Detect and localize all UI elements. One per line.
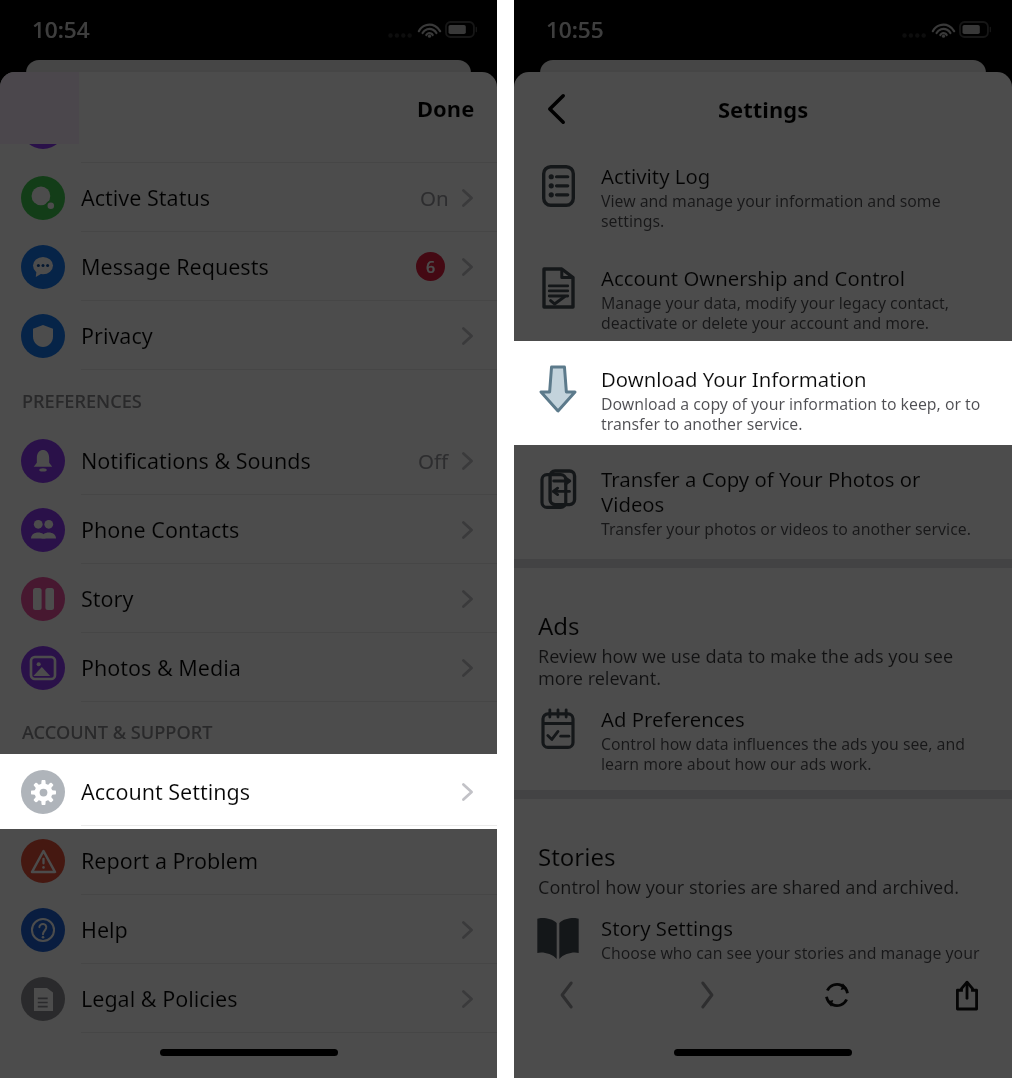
staticText: Activity Log [601,162,711,190]
staticText: Ads [538,609,580,642]
staticText: Stories [538,840,616,873]
staticText: ACCOUNT & SUPPORT [22,720,213,745]
staticText: Control how your stories are shared and … [538,875,960,900]
staticText: Report a Problem [81,846,259,875]
staticText: Legal & Policies [81,984,238,1013]
staticText: Transfer your photos or videos to anothe… [601,518,971,540]
staticText: On [420,184,449,212]
staticText: Control how data influences the ads you … [601,733,983,774]
button[interactable]: Photos & Media [0,633,497,702]
staticText: 6 [426,256,436,278]
button[interactable]: Download Your Information [514,346,1012,454]
staticText: Privacy [81,321,153,350]
staticText: PREFERENCES [22,389,142,414]
staticText: Choose who can see your stories and mana… [601,942,980,964]
staticText: Off [418,447,449,475]
staticText: Settings [718,94,809,124]
button[interactable]: Account Ownership and Control [514,251,1012,346]
button[interactable]: Back [540,972,594,1018]
button[interactable]: Story [0,564,497,633]
staticText: Transfer a Copy of Your Photos or Videos [601,465,983,518]
button[interactable]: Share [940,972,994,1018]
staticText: Photos & Media [81,653,241,682]
button[interactable]: Back [534,87,578,131]
staticText: Phone Contacts [81,515,240,544]
staticText: Download a copy of your information to k… [601,393,983,434]
button[interactable]: Activity Log [514,146,1012,251]
staticText: Account Settings [81,777,251,806]
staticText: Story Settings [601,914,733,942]
button[interactable]: Story Settings [514,900,1012,980]
staticText: Notifications & Sounds [81,446,311,475]
staticText: Ad Preferences [601,705,745,733]
staticText: 10:54 [32,14,90,45]
button[interactable]: Transfer a Copy of Your Photos or Videos [514,454,1012,559]
staticText: Done [417,93,475,123]
button[interactable]: Notifications & Sounds [0,426,497,495]
button[interactable]: Help [0,895,497,964]
button[interactable]: Reload [810,972,864,1018]
button[interactable]: Active Status [0,163,497,232]
staticText: Message Requests [81,252,269,281]
button[interactable]: Done [417,93,475,123]
staticText: Help [81,915,128,944]
button[interactable]: Ad Preferences [514,691,1012,790]
staticText: 10:55 [546,14,604,45]
button[interactable]: Phone Contacts [0,495,497,564]
button[interactable]: Forward [680,972,734,1018]
button[interactable]: Privacy [0,301,497,370]
staticText: Active Status [81,183,210,212]
button[interactable]: Legal & Policies [0,964,497,1033]
staticText: Manage your data, modify your legacy con… [601,292,983,333]
staticText: Account Ownership and Control [601,264,906,292]
staticText: Download Your Information [601,365,867,393]
button[interactable]: Account Settings [0,757,497,826]
button[interactable]: Message Requests [0,232,497,301]
staticText: Review how we use data to make the ads y… [538,644,982,691]
staticText: View and manage your information and som… [601,190,983,231]
staticText: Story [81,584,134,613]
button[interactable]: Report a Problem [0,826,497,895]
